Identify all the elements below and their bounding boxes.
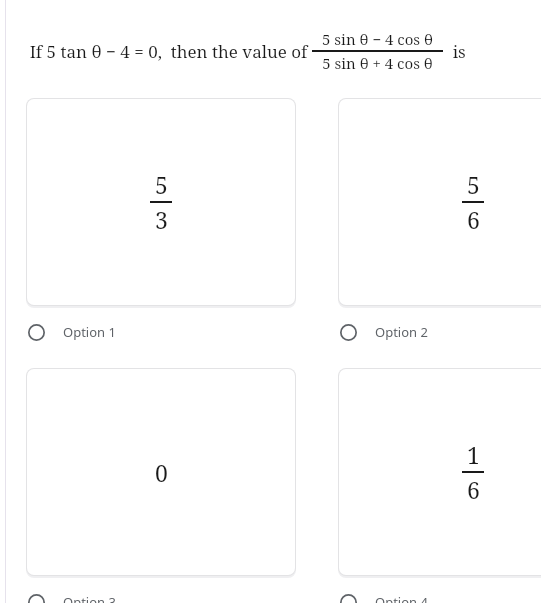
staticText: 5 sin θ + 4 cos θ: [322, 53, 433, 73]
button[interactable]: Option 3: [28, 591, 116, 603]
staticText: 0: [155, 457, 168, 488]
staticText: 6: [467, 474, 480, 505]
staticText: If 5 tan θ − 4 = 0, then the value of: [27, 40, 310, 63]
button[interactable]: Option 1: [28, 321, 116, 343]
staticText: 1: [467, 439, 480, 470]
staticText: Option 2: [375, 323, 428, 341]
button[interactable]: Option 2: [340, 321, 428, 343]
staticText: 5: [155, 169, 168, 200]
staticText: 6: [467, 204, 480, 235]
button[interactable]: Option 4: [340, 591, 428, 603]
staticText: Option 1: [63, 323, 116, 341]
staticText: 5: [467, 169, 480, 200]
staticText: Option 4: [375, 593, 428, 603]
staticText: is: [448, 40, 466, 63]
staticText: Option 3: [63, 593, 116, 603]
staticText: 5 sin θ − 4 cos θ: [322, 29, 433, 49]
staticText: 3: [155, 204, 168, 235]
